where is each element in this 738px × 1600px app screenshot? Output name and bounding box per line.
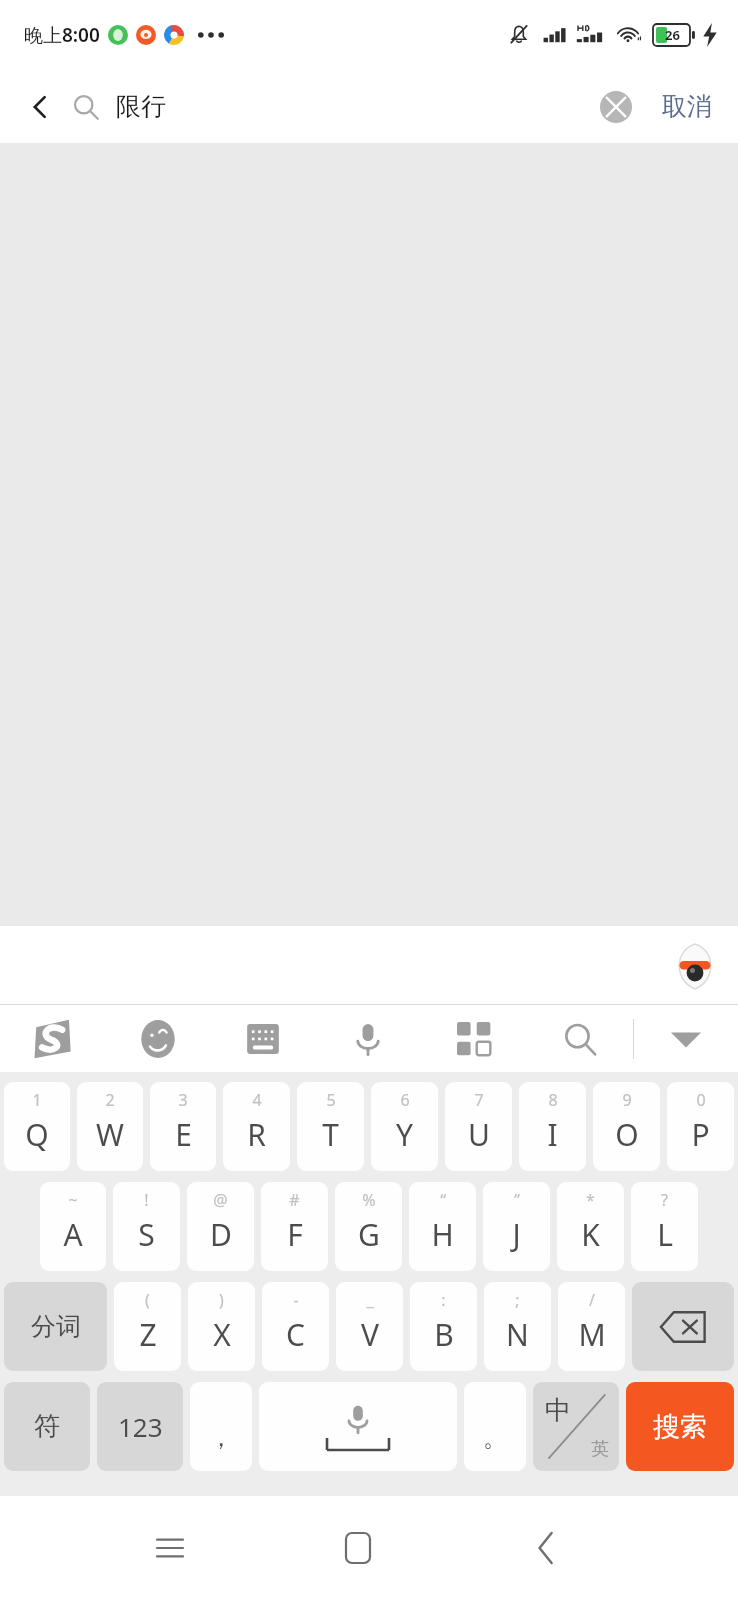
button[interactable]: Hide keyboard <box>634 1005 738 1072</box>
staticText: / <box>589 1289 595 1311</box>
staticText: 限行 <box>116 91 166 122</box>
button[interactable]: More tools <box>421 1005 527 1072</box>
staticText: 。 <box>483 1423 507 1453</box>
button[interactable]: Search <box>527 1005 633 1072</box>
button[interactable]: @ <box>187 1182 254 1271</box>
staticText: F <box>287 1214 303 1255</box>
button[interactable]: 。 <box>464 1382 526 1471</box>
staticText: W <box>96 1114 124 1155</box>
button[interactable]: : <box>410 1282 477 1371</box>
staticText: 中 <box>545 1394 571 1427</box>
staticText: 0 <box>696 1089 706 1111</box>
staticText: 搜索 <box>653 1410 707 1444</box>
staticText: 英 <box>591 1438 609 1461</box>
staticText: 1 <box>32 1089 42 1111</box>
button[interactable]: 取消 <box>658 83 716 130</box>
staticText: M <box>578 1314 606 1355</box>
staticText: 26 <box>665 26 680 44</box>
staticText: 5 <box>326 1089 336 1111</box>
staticText: I <box>547 1114 558 1155</box>
button[interactable]: ? <box>631 1182 698 1271</box>
button[interactable]: Keyboard layout <box>210 1005 315 1072</box>
staticText: Z <box>139 1314 157 1355</box>
button[interactable]: ; <box>484 1282 551 1371</box>
staticText: 2 <box>105 1089 115 1111</box>
button[interactable]: ! <box>113 1182 180 1271</box>
button[interactable]: # <box>261 1182 328 1271</box>
staticText: Y <box>396 1114 413 1155</box>
staticText: ~ <box>68 1189 78 1211</box>
button[interactable]: 0 <box>667 1082 734 1171</box>
staticText: 4 <box>252 1089 262 1111</box>
staticText: ) <box>219 1289 224 1311</box>
staticText: * <box>586 1189 595 1211</box>
button[interactable]: 2 <box>77 1082 143 1171</box>
staticText: ! <box>144 1189 149 1211</box>
button[interactable]: ” <box>483 1182 550 1271</box>
button[interactable]: 分词 <box>4 1282 107 1371</box>
staticText: 符 <box>34 1410 60 1443</box>
staticText: B <box>434 1314 454 1355</box>
button[interactable]: 4 <box>223 1082 290 1171</box>
button[interactable]: 6 <box>371 1082 438 1171</box>
button[interactable]: % <box>335 1182 402 1271</box>
staticText: ( <box>145 1289 150 1311</box>
staticText: S <box>138 1214 155 1255</box>
button[interactable]: Emoji <box>105 1005 210 1072</box>
button[interactable]: 符 <box>4 1382 90 1471</box>
staticText: : <box>441 1289 446 1311</box>
button[interactable]: 搜索 <box>626 1382 734 1471</box>
staticText: T <box>322 1114 339 1155</box>
staticText: 分词 <box>31 1311 81 1342</box>
button[interactable]: ( <box>114 1282 181 1371</box>
staticText: K <box>581 1214 600 1255</box>
button[interactable]: Switch Chinese English <box>533 1382 619 1471</box>
staticText: E <box>175 1114 192 1155</box>
staticText: G <box>358 1214 380 1255</box>
staticText: H <box>431 1214 454 1255</box>
button[interactable]: Sogou logo <box>0 1005 105 1072</box>
staticText: U <box>468 1114 490 1155</box>
button[interactable]: ， <box>190 1382 252 1471</box>
button[interactable]: 9 <box>593 1082 660 1171</box>
button[interactable]: “ <box>409 1182 476 1271</box>
button[interactable]: Recents <box>130 1508 210 1588</box>
button[interactable]: Home <box>318 1508 398 1588</box>
button[interactable]: ~ <box>40 1182 106 1271</box>
button[interactable]: * <box>557 1182 624 1271</box>
staticText: C <box>286 1314 305 1355</box>
button[interactable]: _ <box>336 1282 403 1371</box>
staticText: “ <box>440 1189 446 1211</box>
staticText: ? <box>661 1189 668 1211</box>
staticText: Q <box>25 1114 49 1155</box>
staticText: @ <box>213 1189 228 1211</box>
staticText: # <box>289 1189 300 1211</box>
staticText: D <box>210 1214 232 1255</box>
button[interactable]: - <box>262 1282 329 1371</box>
button[interactable]: 8 <box>519 1082 586 1171</box>
staticText: 6 <box>400 1089 410 1111</box>
staticText: 9 <box>622 1089 632 1111</box>
button[interactable]: ) <box>188 1282 255 1371</box>
button[interactable]: Clear <box>592 83 640 131</box>
button[interactable]: 1 <box>4 1082 70 1171</box>
staticText: 123 <box>118 1409 163 1444</box>
button[interactable]: Sogou mascot <box>674 941 716 991</box>
button[interactable]: Space <box>259 1382 457 1471</box>
staticText: 7 <box>474 1089 484 1111</box>
button[interactable]: 3 <box>150 1082 216 1171</box>
staticText: N <box>506 1314 529 1355</box>
staticText: L <box>657 1214 673 1255</box>
button[interactable]: 123 <box>97 1382 183 1471</box>
button[interactable]: Voice input <box>315 1005 421 1072</box>
button[interactable]: 5 <box>297 1082 364 1171</box>
button[interactable]: Back <box>506 1508 586 1588</box>
button[interactable]: Backspace <box>632 1282 734 1371</box>
staticText: R <box>247 1114 266 1155</box>
button[interactable]: 7 <box>445 1082 512 1171</box>
staticText: 8 <box>548 1089 558 1111</box>
button[interactable]: / <box>558 1282 625 1371</box>
staticText: - <box>293 1289 299 1311</box>
button[interactable]: Back <box>18 85 62 129</box>
staticText: % <box>362 1189 376 1211</box>
